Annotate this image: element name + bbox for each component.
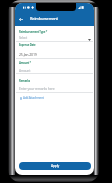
staticText: Reimbursement: [30, 16, 58, 21]
staticText: Amount *: [19, 61, 31, 65]
staticText: 25-Jan-2019: [19, 52, 37, 57]
staticText: Select: [19, 36, 27, 40]
staticText: Reimbursement Type *: [19, 30, 47, 34]
staticText: Amount: [19, 69, 31, 73]
button[interactable]: Add Attachment: [20, 96, 44, 100]
staticText: Enter your remarks here: [19, 86, 55, 91]
button[interactable]: Apply: [19, 162, 91, 170]
staticText: Apply: [51, 164, 60, 168]
staticText: Add Attachment: [23, 96, 44, 100]
staticText: Remarks: [19, 79, 30, 83]
button[interactable]: Back: [16, 14, 26, 24]
staticText: Expense Date: [19, 43, 36, 47]
